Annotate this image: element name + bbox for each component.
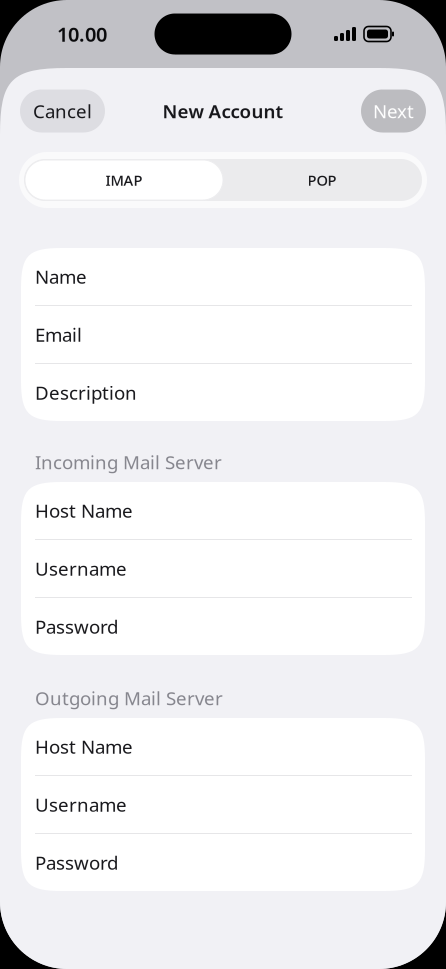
button[interactable]: Email — [21, 306, 425, 363]
button[interactable]: Username — [21, 540, 425, 597]
button[interactable]: Password — [21, 834, 425, 891]
button[interactable]: Name — [21, 248, 425, 305]
staticText: Outgoing Mail Server — [35, 686, 223, 710]
staticText: Email — [35, 322, 82, 347]
staticText: POP — [307, 170, 336, 190]
button[interactable]: POP — [223, 160, 421, 200]
staticText: Next — [373, 99, 414, 123]
button[interactable]: Host Name — [21, 482, 425, 539]
button[interactable]: Host Name — [21, 718, 425, 775]
staticText: New Account — [162, 99, 283, 123]
staticText: Cancel — [33, 99, 92, 123]
button[interactable]: Cancel — [20, 89, 105, 132]
button[interactable]: Description — [21, 364, 425, 421]
button[interactable]: IMAP — [25, 160, 223, 200]
staticText: Host Name — [35, 498, 133, 523]
button[interactable]: Username — [21, 776, 425, 833]
staticText: Username — [35, 556, 127, 581]
staticText: Password — [35, 850, 118, 875]
button[interactable]: Next — [361, 89, 426, 132]
staticText: Host Name — [35, 734, 133, 759]
staticText: Name — [35, 264, 87, 289]
staticText: Username — [35, 792, 127, 817]
staticText: Password — [35, 614, 118, 639]
staticText: IMAP — [105, 170, 142, 190]
button[interactable]: Password — [21, 598, 425, 655]
staticText: Incoming Mail Server — [35, 450, 222, 474]
staticText: Description — [35, 380, 137, 405]
staticText: 10.00 — [57, 21, 107, 47]
